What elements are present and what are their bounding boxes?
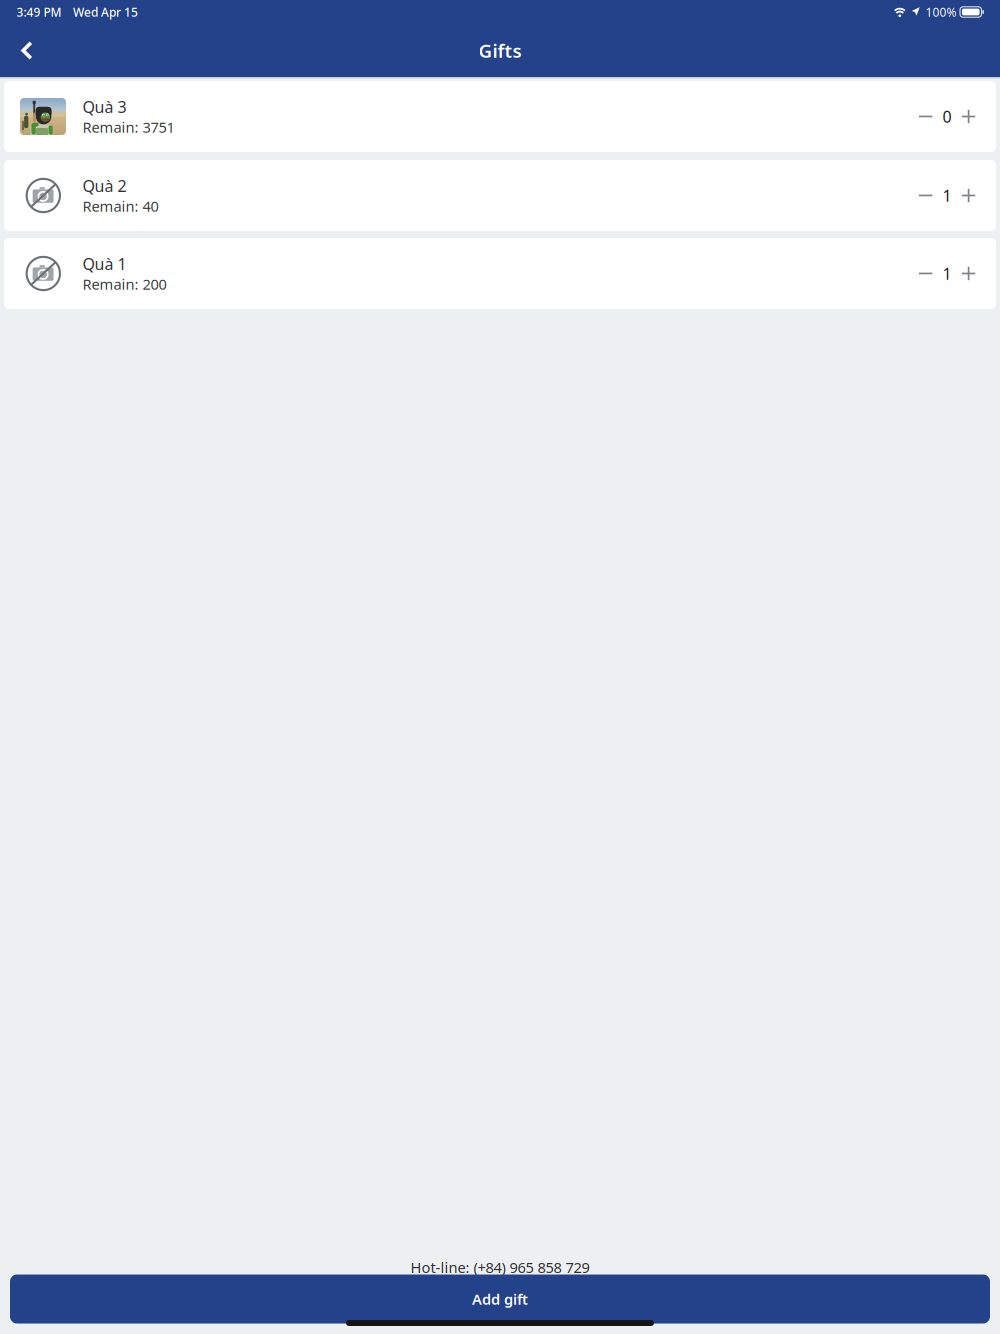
staticText: 1: [943, 263, 952, 284]
staticText: 3:49 PM: [16, 4, 61, 20]
staticText: 1: [943, 185, 952, 206]
staticText: 0: [943, 106, 952, 127]
button[interactable]: Decrease quantity: [914, 251, 938, 295]
button[interactable]: Add gift: [10, 1274, 990, 1323]
button[interactable]: Quà 2: [4, 160, 996, 231]
staticText: Quà 2: [82, 175, 126, 196]
staticText: Remain: 200: [82, 274, 166, 294]
staticText: Hot-line: (+84) 965 858 729: [410, 1258, 589, 1277]
button[interactable]: Quà 1: [4, 238, 996, 309]
button[interactable]: Quà 3: [4, 81, 996, 152]
button[interactable]: Increase quantity: [957, 251, 981, 295]
staticText: Add gift: [472, 1289, 528, 1309]
staticText: Remain: 3751: [82, 117, 174, 137]
staticText: Gifts: [478, 38, 521, 63]
staticText: Wed Apr 15: [73, 4, 138, 20]
button[interactable]: Increase quantity: [957, 173, 981, 217]
button[interactable]: Increase quantity: [957, 94, 981, 138]
staticText: Quà 1: [82, 253, 126, 274]
staticText: Remain: 40: [82, 196, 158, 216]
button[interactable]: Decrease quantity: [914, 173, 938, 217]
button[interactable]: Back: [0, 28, 54, 72]
staticText: Quà 3: [82, 96, 126, 117]
button[interactable]: Decrease quantity: [914, 94, 938, 138]
staticText: 100%: [925, 4, 956, 20]
